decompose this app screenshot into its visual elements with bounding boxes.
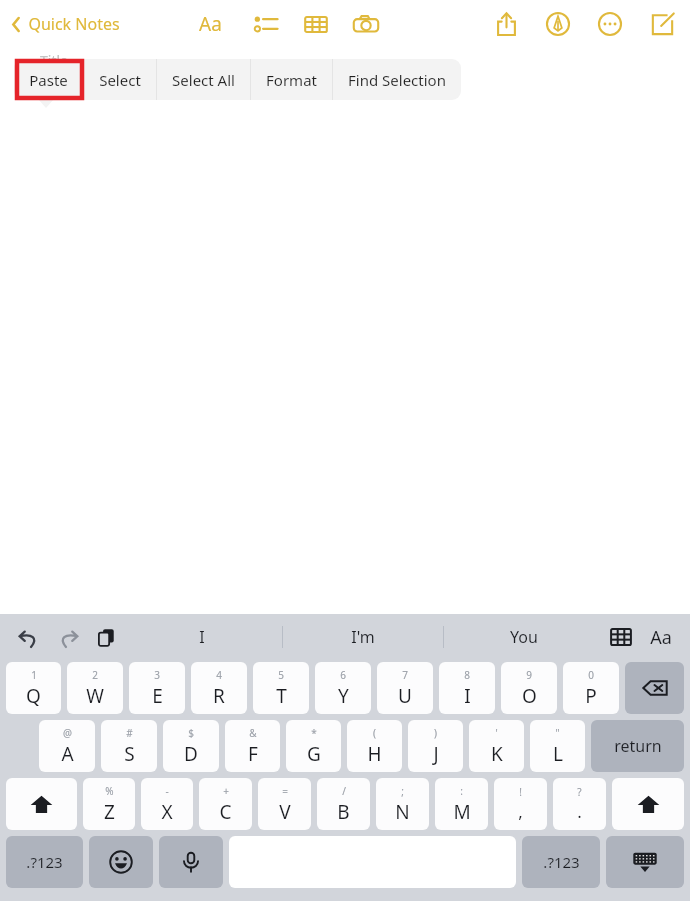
- button[interactable]: #: [101, 720, 157, 772]
- staticText: ": [555, 726, 560, 740]
- staticText: A: [61, 741, 74, 767]
- button[interactable]: &: [225, 720, 280, 772]
- staticText: F: [248, 741, 258, 767]
- button[interactable]: I'm: [283, 614, 443, 659]
- button[interactable]: Backspace: [625, 662, 684, 714]
- button[interactable]: .?123: [522, 836, 600, 888]
- button[interactable]: Table: [604, 620, 638, 654]
- button[interactable]: Undo: [12, 621, 44, 653]
- button[interactable]: 4: [191, 662, 247, 714]
- button[interactable]: New note: [640, 4, 684, 44]
- staticText: T: [276, 683, 287, 709]
- staticText: !: [519, 785, 522, 799]
- staticText: S: [124, 741, 135, 767]
- button[interactable]: Hide keyboard: [606, 836, 684, 888]
- button[interactable]: Select All: [157, 59, 250, 100]
- staticText: V: [279, 799, 291, 825]
- staticText: ;: [401, 784, 404, 798]
- button[interactable]: ?: [553, 778, 606, 830]
- button[interactable]: ): [408, 720, 463, 772]
- button[interactable]: ;: [376, 778, 429, 830]
- button[interactable]: =: [258, 778, 311, 830]
- staticText: ?: [577, 785, 582, 799]
- staticText: :: [460, 784, 463, 798]
- button[interactable]: 3: [129, 662, 185, 714]
- staticText: 4: [216, 668, 222, 682]
- button[interactable]: 2: [67, 662, 123, 714]
- staticText: 6: [340, 668, 346, 682]
- button[interactable]: return: [591, 720, 684, 772]
- staticText: I'm: [351, 626, 375, 648]
- button[interactable]: I: [122, 614, 282, 659]
- button[interactable]: 0: [563, 662, 619, 714]
- button[interactable]: %: [83, 778, 135, 830]
- button[interactable]: *: [286, 720, 341, 772]
- staticText: H: [367, 741, 382, 767]
- button[interactable]: More options: [588, 4, 632, 44]
- button[interactable]: 5: [253, 662, 309, 714]
- staticText: 9: [526, 668, 532, 682]
- button[interactable]: /: [317, 778, 370, 830]
- staticText: You: [510, 626, 538, 648]
- button[interactable]: Format: [251, 59, 332, 100]
- staticText: G: [307, 741, 321, 767]
- staticText: 1: [31, 668, 37, 682]
- button[interactable]: Shift: [6, 778, 77, 830]
- button[interactable]: Paste: [14, 59, 83, 100]
- staticText: ': [495, 726, 498, 740]
- staticText: J: [433, 741, 439, 767]
- button[interactable]: Format: [644, 620, 678, 654]
- staticText: 7: [402, 668, 408, 682]
- button[interactable]: 8: [439, 662, 495, 714]
- button[interactable]: ': [469, 720, 524, 772]
- staticText: Format: [266, 70, 317, 90]
- button[interactable]: Share: [484, 4, 528, 44]
- staticText: 8: [464, 668, 470, 682]
- staticText: U: [398, 683, 412, 709]
- staticText: R: [213, 683, 225, 709]
- button[interactable]: You: [444, 614, 604, 659]
- button[interactable]: @: [39, 720, 95, 772]
- staticText: I: [199, 626, 205, 648]
- button[interactable]: Paste: [90, 621, 122, 653]
- button[interactable]: Text format: [190, 4, 230, 44]
- staticText: 0: [588, 668, 594, 682]
- button[interactable]: Camera: [344, 4, 388, 44]
- button[interactable]: 9: [501, 662, 557, 714]
- button[interactable]: :: [435, 778, 488, 830]
- button[interactable]: Quick Notes: [8, 7, 122, 41]
- button[interactable]: Markup: [536, 4, 580, 44]
- staticText: ): [434, 726, 437, 740]
- button[interactable]: Checklist: [244, 4, 288, 44]
- button[interactable]: Find Selection: [333, 59, 461, 100]
- staticText: /: [342, 784, 346, 798]
- staticText: return: [614, 735, 662, 757]
- button[interactable]: $: [163, 720, 219, 772]
- button[interactable]: .?123: [6, 836, 83, 888]
- button[interactable]: Table: [294, 4, 338, 44]
- staticText: Select All: [172, 70, 235, 90]
- staticText: Find Selection: [348, 70, 446, 90]
- button[interactable]: Select: [84, 59, 156, 100]
- staticText: 3: [154, 668, 160, 682]
- staticText: #: [126, 726, 133, 740]
- button[interactable]: 1: [6, 662, 61, 714]
- button[interactable]: +: [199, 778, 252, 830]
- button[interactable]: 6: [315, 662, 371, 714]
- staticText: M: [453, 799, 471, 825]
- button[interactable]: ": [530, 720, 585, 772]
- staticText: Z: [104, 799, 115, 825]
- staticText: *: [311, 726, 317, 740]
- staticText: P: [585, 683, 597, 709]
- button[interactable]: (: [347, 720, 402, 772]
- staticText: B: [337, 799, 350, 825]
- button[interactable]: 7: [377, 662, 433, 714]
- button[interactable]: -: [141, 778, 193, 830]
- button[interactable]: Emoji: [89, 836, 153, 888]
- button[interactable]: !: [494, 778, 547, 830]
- button[interactable]: Shift: [612, 778, 684, 830]
- button[interactable]: Dictation: [159, 836, 223, 888]
- button[interactable]: Redo: [52, 621, 84, 653]
- staticText: .: [577, 800, 582, 823]
